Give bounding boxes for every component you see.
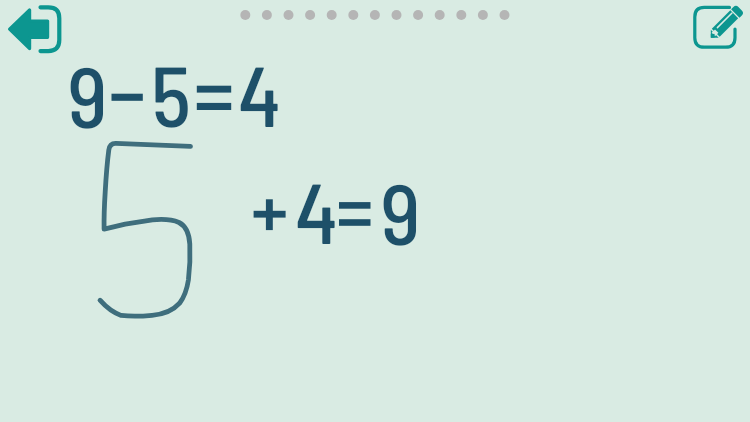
button[interactable]: Back (0, 0, 70, 60)
staticText: 9 (68, 43, 108, 145)
button[interactable]: Edit (690, 0, 750, 60)
staticText: 5 (151, 42, 192, 144)
staticText: 4 (295, 159, 338, 261)
staticText: 9 (381, 160, 421, 262)
staticText: 4 (238, 42, 281, 144)
